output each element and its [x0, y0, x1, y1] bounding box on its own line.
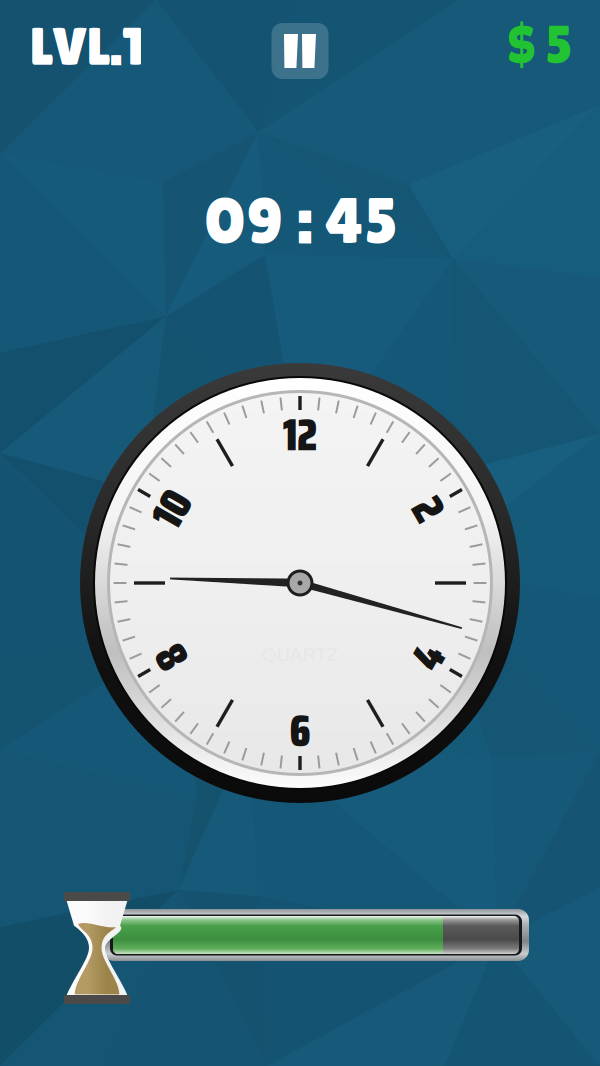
staticText: 12 — [283, 400, 317, 470]
staticText: 09 : 45 — [204, 183, 398, 257]
staticText: $ 5 — [507, 13, 573, 74]
staticText: 2 — [418, 474, 438, 544]
staticText: 4 — [418, 622, 439, 692]
staticText: 6 — [289, 696, 310, 766]
staticText: 8 — [161, 622, 183, 692]
staticText: LVL.1 — [30, 15, 144, 76]
button[interactable]: Pause — [271, 23, 328, 79]
staticText: 10 — [154, 474, 189, 544]
